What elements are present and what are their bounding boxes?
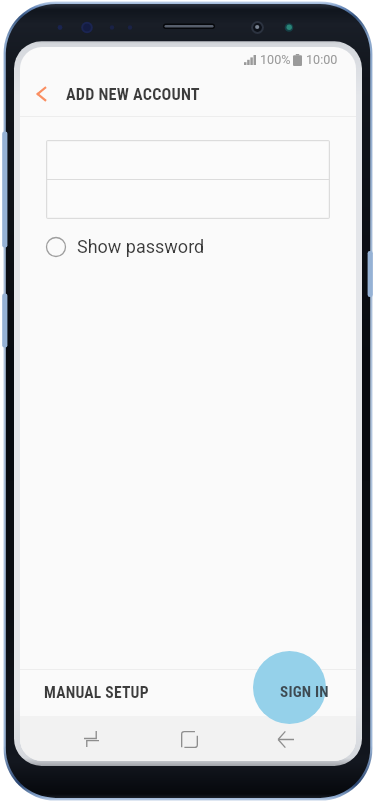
staticText: SIGN IN — [280, 683, 329, 701]
staticText: Show password — [77, 236, 205, 257]
staticText: 10:00 — [306, 52, 338, 67]
button[interactable]: Recent apps — [71, 719, 111, 759]
button[interactable]: Show password — [44, 229, 205, 265]
button[interactable]: Home — [169, 719, 209, 759]
button[interactable]: SIGN IN — [264, 666, 344, 718]
staticText: 100% — [260, 52, 291, 67]
button[interactable]: Back — [266, 719, 306, 759]
staticText: MANUAL SETUP — [44, 684, 149, 702]
button[interactable]: MANUAL SETUP — [32, 674, 161, 712]
button[interactable]: Back — [25, 79, 57, 111]
staticText: ADD NEW ACCOUNT — [66, 85, 200, 104]
